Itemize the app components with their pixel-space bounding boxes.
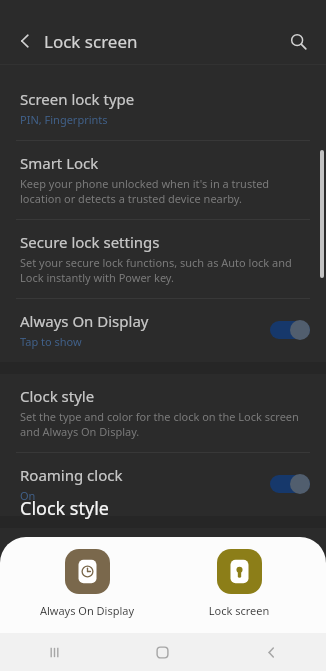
- button[interactable]: Always On Display toggle: [270, 320, 312, 340]
- staticText: PIN, Fingerprints: [20, 112, 108, 127]
- button[interactable]: Recent apps: [0, 633, 108, 671]
- button[interactable]: Back: [10, 26, 40, 56]
- staticText: On: [20, 488, 36, 503]
- button[interactable]: Clock style: [0, 374, 326, 452]
- staticText: Tap to show: [20, 334, 82, 349]
- staticText: Roaming clock: [20, 465, 123, 485]
- staticText: Set the type and color for the clock on …: [20, 409, 304, 439]
- staticText: Screen lock type: [20, 89, 135, 109]
- staticText: Always On Display: [22, 603, 152, 618]
- staticText: Lock screen: [44, 30, 138, 53]
- staticText: Smart Lock: [20, 153, 99, 173]
- button[interactable]: Smart Lock: [0, 141, 326, 219]
- staticText: Clock style: [20, 496, 109, 521]
- button[interactable]: FaceWidgets: [0, 528, 326, 591]
- staticText: Clock style: [20, 386, 95, 406]
- button[interactable]: Search: [282, 25, 314, 57]
- staticText: Lock screen: [174, 603, 304, 618]
- button[interactable]: Roaming clock: [0, 453, 326, 516]
- button[interactable]: Always On Display: [22, 547, 152, 620]
- button[interactable]: Back: [217, 633, 326, 671]
- button[interactable]: Home: [108, 633, 217, 671]
- staticText: Secure lock settings: [20, 232, 160, 252]
- staticText: Keep your phone unlocked when it's in a …: [20, 176, 304, 206]
- button[interactable]: Secure lock settings: [0, 220, 326, 298]
- staticText: Always On Display: [20, 311, 149, 331]
- button[interactable]: Lock screen: [174, 547, 304, 620]
- staticText: Get quick access to useful information o…: [20, 563, 280, 578]
- staticText: Set your secure lock functions, such as …: [20, 255, 304, 285]
- staticText: FaceWidgets: [20, 540, 110, 560]
- button[interactable]: Screen lock type: [0, 77, 326, 140]
- button[interactable]: Roaming clock toggle: [270, 474, 312, 494]
- button[interactable]: Always On Display: [0, 299, 326, 362]
